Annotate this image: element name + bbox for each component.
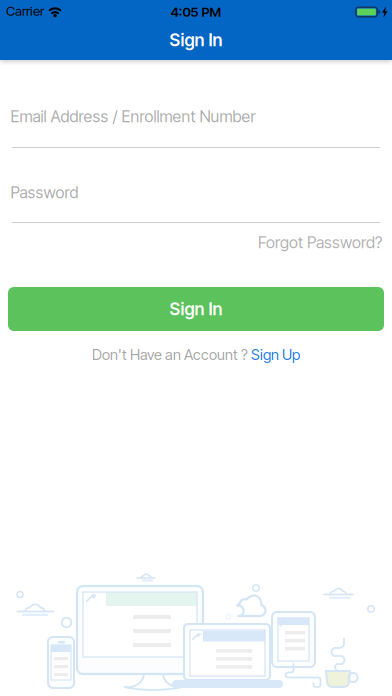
staticText: Forgot Password?	[258, 233, 382, 252]
staticText: Don't Have an Account ?	[92, 346, 251, 363]
staticText: 4:05 PM	[170, 4, 221, 20]
staticText: Password	[10, 183, 78, 202]
button[interactable]: Sign Up	[251, 346, 300, 363]
button[interactable]: Email Address / Enrollment Number	[0, 103, 392, 149]
staticText: Sign In	[169, 299, 222, 319]
button[interactable]: Forgot Password?	[258, 233, 382, 252]
staticText: Email Address / Enrollment Number	[10, 107, 255, 126]
staticText: Carrier	[6, 3, 44, 19]
button[interactable]: Password	[0, 179, 392, 224]
staticText: Sign Up	[251, 346, 300, 363]
button[interactable]: Sign In	[8, 287, 384, 331]
staticText: Sign In	[169, 30, 222, 50]
